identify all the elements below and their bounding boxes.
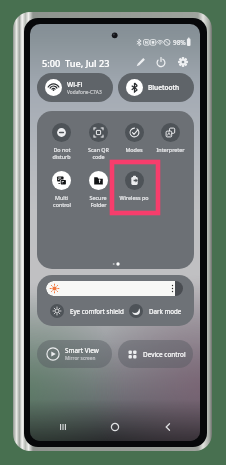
button[interactable]: Device control (118, 340, 193, 368)
button[interactable]: Secure (80, 171, 116, 208)
button[interactable]: Bluetooth (118, 73, 194, 102)
button[interactable]: Smart View (37, 340, 112, 368)
staticText: control (53, 201, 71, 208)
button[interactable]: Brightness (46, 281, 183, 296)
button[interactable]: Recents (43, 416, 83, 438)
staticText: Wireless po (119, 194, 149, 201)
button[interactable]: Eye comfort shield (50, 301, 128, 320)
button[interactable]: Wi-Fi (37, 73, 113, 102)
staticText: 5:00 Tue, Jul 23 (42, 57, 110, 70)
button[interactable]: Do not (43, 123, 80, 160)
staticText: Modes (125, 146, 143, 153)
staticText: Multi (55, 194, 68, 201)
button[interactable]: Home (95, 416, 135, 438)
button[interactable]: Settings (176, 55, 190, 69)
staticText: disturb (52, 153, 71, 160)
button[interactable]: Scan QR (80, 123, 116, 160)
staticText: Mirror screen (65, 355, 96, 362)
staticText: Folder (90, 201, 107, 208)
staticText: code (92, 153, 105, 160)
staticText: Interpreter (156, 146, 185, 153)
button[interactable]: Modes (116, 123, 152, 153)
staticText: 98% (173, 38, 186, 47)
button[interactable]: Multi (43, 171, 80, 208)
button[interactable]: Dark mode (129, 301, 191, 320)
staticText: Eye comfort shield (70, 307, 124, 315)
staticText: Smart View (65, 346, 99, 355)
staticText: Secure (89, 194, 107, 201)
button[interactable]: Interpreter (152, 123, 188, 153)
staticText: Device control (143, 350, 186, 359)
staticText: Wi-Fi (67, 80, 83, 89)
button[interactable]: Edit (134, 55, 148, 69)
staticText: Scan QR (88, 146, 109, 153)
button[interactable]: Wireless po (116, 171, 152, 201)
button[interactable]: Power (154, 55, 168, 69)
staticText: Do not (53, 146, 71, 153)
staticText: Bluetooth (148, 83, 180, 92)
button[interactable]: Back (148, 416, 188, 438)
staticText: Vodafone-C7A3 (67, 89, 102, 96)
staticText: Dark mode (149, 307, 182, 315)
